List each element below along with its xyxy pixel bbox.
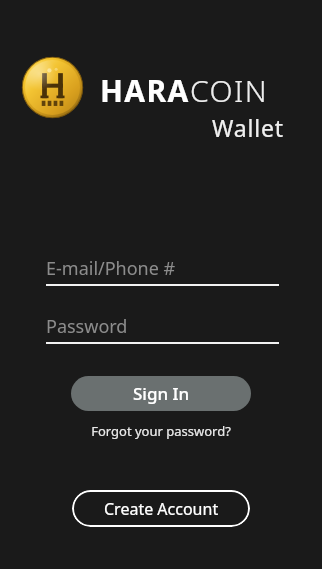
staticText: Sign In [133,382,190,405]
button[interactable]: Create Account [72,490,250,527]
button[interactable]: E-mail/Phone # [46,255,279,286]
staticText: Create Account [104,498,219,520]
staticText: HARA [100,70,190,111]
staticText: Forgot your password? [91,422,231,440]
staticText: Wallet [212,112,284,143]
button[interactable]: Password [46,313,279,344]
button[interactable]: Sign In [71,376,251,411]
other: HaraCoin logo [22,57,83,118]
staticText: Password [46,314,128,339]
staticText: E-mail/Phone # [46,256,176,281]
staticText: COIN [190,70,268,111]
button[interactable]: Forgot your password? [71,419,251,443]
